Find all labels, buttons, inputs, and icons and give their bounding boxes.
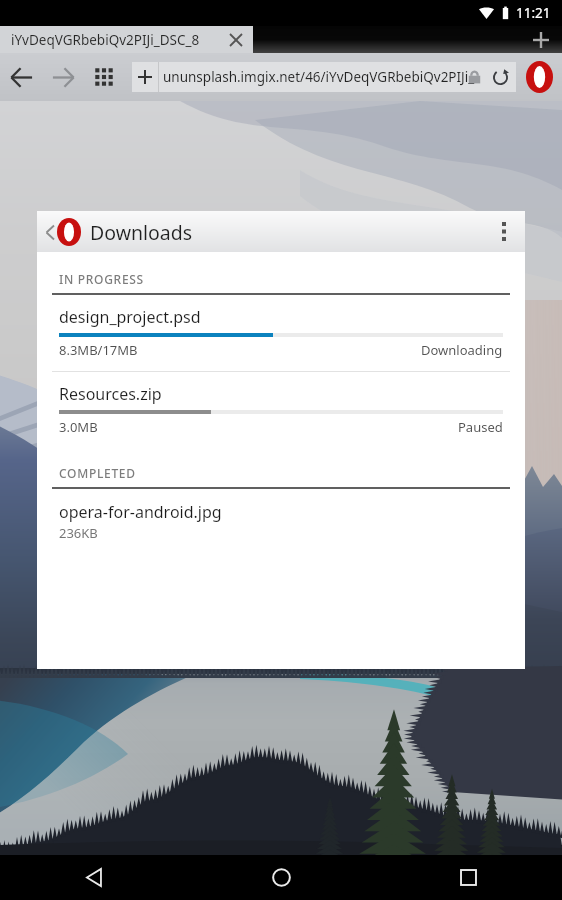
- button[interactable]: Back: [2, 58, 40, 96]
- button[interactable]: Recents: [375, 855, 562, 900]
- button[interactable]: Reload: [486, 63, 514, 91]
- staticText: COMPLETED: [59, 465, 136, 481]
- button[interactable]: Speed dial: [85, 58, 123, 96]
- staticText: 11:21: [516, 4, 551, 22]
- staticText: opera-for-android.jpg: [59, 501, 222, 523]
- button[interactable]: opera-for-android.jpg: [37, 489, 525, 542]
- button[interactable]: Resources.zip: [37, 372, 525, 448]
- staticText: 3.0MB: [59, 418, 98, 436]
- staticText: Resources.zip: [59, 383, 162, 405]
- button[interactable]: Secure: [461, 64, 487, 90]
- staticText: IN PROGRESS: [59, 271, 144, 287]
- button[interactable]: New tab: [519, 26, 562, 53]
- staticText: Downloads: [90, 219, 193, 246]
- button[interactable]: Close tab: [219, 26, 253, 53]
- button[interactable]: More options: [483, 211, 525, 252]
- button[interactable]: Back: [0, 855, 188, 900]
- button[interactable]: Forward: [44, 58, 82, 96]
- button[interactable]: Downloads: [46, 218, 193, 246]
- staticText: 8.3MB/17MB: [59, 341, 138, 359]
- staticText: iYvDeqVGRbebiQv2PIJi_DSC_8: [11, 31, 200, 49]
- button[interactable]: design_project.psd: [37, 295, 525, 371]
- staticText: Downloading: [421, 341, 503, 359]
- button[interactable]: ununsplash.imgix.net/46/iYvDeqVGRbebiQv2…: [132, 62, 516, 92]
- staticText: design_project.psd: [59, 306, 201, 328]
- button[interactable]: iYvDeqVGRbebiQv2PIJi_DSC_8: [0, 26, 253, 53]
- button[interactable]: Opera menu: [516, 53, 562, 101]
- staticText: Paused: [458, 418, 503, 436]
- staticText: ununsplash.imgix.net/46/iYvDeqVGRbebiQv2…: [163, 68, 475, 86]
- staticText: 236KB: [59, 524, 98, 542]
- button[interactable]: Home: [188, 855, 375, 900]
